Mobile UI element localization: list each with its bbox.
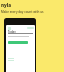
staticText: Make every day count with us: [1, 10, 64, 14]
button[interactable]: [8, 41, 28, 44]
staticText: nyla: [1, 2, 12, 8]
staticText: Today: [8, 30, 16, 34]
button[interactable]: Logo: [1, 2, 12, 8]
